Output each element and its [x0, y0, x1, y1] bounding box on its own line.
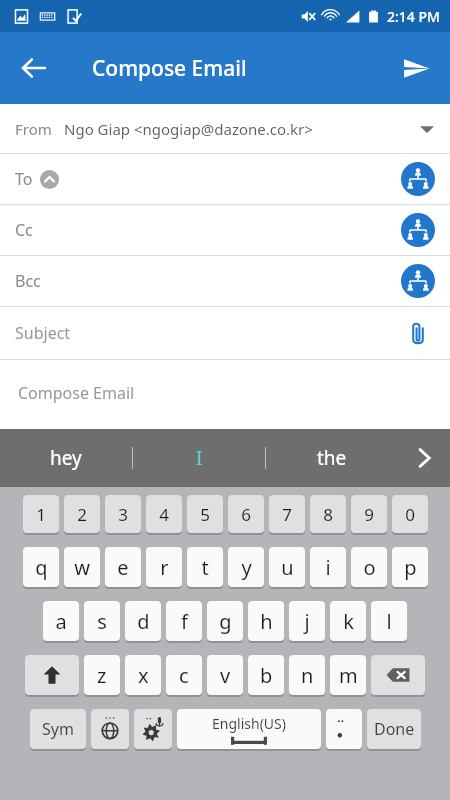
button[interactable]: Shift — [25, 655, 79, 695]
button[interactable]: 4 — [146, 495, 182, 533]
button[interactable]: y — [228, 547, 264, 587]
button[interactable]: 7 — [269, 495, 305, 533]
staticText: b — [260, 662, 273, 689]
staticText: English(US) — [212, 714, 286, 733]
button[interactable]: Attach file — [398, 313, 438, 353]
button[interactable]: 6 — [228, 495, 264, 533]
button[interactable]: Space — [177, 709, 321, 749]
staticText: w — [74, 554, 90, 581]
button[interactable]: k — [330, 601, 366, 641]
staticText: r — [160, 554, 169, 581]
button[interactable]: Pick contacts for Bcc — [396, 259, 440, 303]
staticText: u — [281, 554, 294, 581]
staticText: 2:14 PM — [387, 7, 440, 26]
staticText: p — [404, 554, 417, 581]
staticText: l — [386, 608, 392, 635]
button[interactable]: o — [351, 547, 387, 587]
button[interactable]: m — [330, 655, 366, 695]
button[interactable]: Subject — [0, 307, 450, 359]
button[interactable]: a — [43, 601, 79, 641]
button[interactable]: r — [146, 547, 182, 587]
staticText: y — [241, 554, 252, 581]
button[interactable]: I — [133, 429, 265, 487]
staticText: d — [137, 608, 150, 635]
button[interactable]: Bcc — [0, 256, 450, 306]
staticText: From — [15, 119, 52, 139]
button[interactable]: 8 — [310, 495, 346, 533]
button[interactable]: Pick contacts for To — [396, 157, 440, 201]
button[interactable]: Backspace — [371, 655, 425, 695]
button[interactable]: u — [269, 547, 305, 587]
button[interactable]: Change language — [91, 709, 129, 749]
button[interactable]: the — [266, 429, 398, 487]
staticText: Ngo Giap <ngogiap@dazone.co.kr> — [64, 119, 313, 139]
staticText: 9 — [364, 503, 374, 526]
button[interactable]: 0 — [392, 495, 428, 533]
staticText: Bcc — [15, 270, 41, 292]
button[interactable]: 9 — [351, 495, 387, 533]
button[interactable]: Pick contacts for Cc — [396, 208, 440, 252]
button[interactable]: f — [166, 601, 202, 641]
staticText: 3 — [118, 503, 128, 526]
button[interactable]: j — [289, 601, 325, 641]
staticText: j — [304, 608, 310, 635]
staticText: m — [339, 662, 358, 689]
staticText: Done — [374, 718, 415, 740]
staticText: e — [117, 554, 129, 581]
button[interactable]: Back — [8, 42, 60, 94]
button[interactable]: 1 — [23, 495, 59, 533]
button[interactable]: i — [310, 547, 346, 587]
button[interactable]: Settings — [134, 709, 172, 749]
button[interactable]: h — [248, 601, 284, 641]
staticText: h — [260, 608, 273, 635]
staticText: Compose Email — [18, 382, 135, 404]
staticText: 1 — [36, 503, 46, 526]
button[interactable]: d — [125, 601, 161, 641]
button[interactable]: From — [0, 104, 450, 153]
button[interactable]: Cc — [0, 205, 450, 255]
button[interactable]: c — [166, 655, 202, 695]
staticText: Cc — [15, 219, 33, 241]
button[interactable]: Punctuation — [326, 709, 362, 749]
button[interactable]: e — [105, 547, 141, 587]
staticText: Subject — [15, 322, 71, 344]
staticText: t — [201, 554, 209, 581]
staticText: Sym — [42, 718, 74, 740]
button[interactable]: More suggestions — [398, 429, 450, 487]
staticText: f — [181, 608, 188, 635]
staticText: s — [97, 608, 107, 635]
button[interactable]: b — [248, 655, 284, 695]
button[interactable]: 2 — [64, 495, 100, 533]
staticText: the — [317, 445, 347, 471]
button[interactable]: 3 — [105, 495, 141, 533]
button[interactable]: To — [0, 154, 450, 204]
button[interactable]: s — [84, 601, 120, 641]
button[interactable]: x — [125, 655, 161, 695]
button[interactable]: g — [207, 601, 243, 641]
button[interactable]: Done — [367, 709, 421, 749]
button[interactable]: w — [64, 547, 100, 587]
button[interactable]: p — [392, 547, 428, 587]
button[interactable]: Sym — [30, 709, 86, 749]
button[interactable]: t — [187, 547, 223, 587]
staticText: q — [35, 554, 48, 581]
staticText: 4 — [159, 503, 169, 526]
staticText: c — [179, 662, 189, 689]
button[interactable]: 5 — [187, 495, 223, 533]
staticText: z — [97, 662, 107, 689]
button[interactable]: hey — [0, 429, 132, 487]
button[interactable]: Compose Email — [0, 360, 450, 425]
staticText: 0 — [405, 503, 415, 526]
staticText: v — [220, 662, 231, 689]
staticText: Compose Email — [92, 54, 247, 83]
button[interactable]: Send — [390, 42, 442, 94]
button[interactable]: n — [289, 655, 325, 695]
staticText: 6 — [241, 503, 251, 526]
button[interactable]: q — [23, 547, 59, 587]
staticText: To — [15, 168, 33, 190]
button[interactable]: v — [207, 655, 243, 695]
staticText: o — [363, 554, 376, 581]
button[interactable]: z — [84, 655, 120, 695]
button[interactable]: l — [371, 601, 407, 641]
staticText: 8 — [323, 503, 333, 526]
